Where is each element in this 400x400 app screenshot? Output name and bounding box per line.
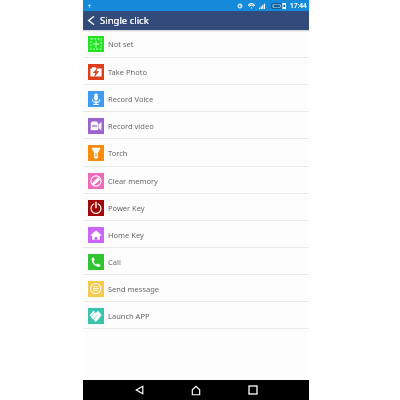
button[interactable]: Back: [124, 380, 154, 400]
button[interactable]: Take Photo: [83, 58, 309, 85]
staticText: Torch: [108, 148, 128, 158]
button[interactable]: Recent apps: [238, 380, 268, 400]
button[interactable]: Not set: [83, 30, 309, 58]
staticText: Take Photo: [108, 67, 147, 77]
staticText: Record video: [108, 121, 154, 131]
button[interactable]: Send message: [83, 275, 309, 302]
button[interactable]: Record Voice: [83, 85, 309, 112]
staticText: 17:44: [290, 1, 307, 10]
staticText: Single click: [100, 14, 149, 27]
button[interactable]: Record video: [83, 112, 309, 139]
staticText: Launch APP: [108, 311, 150, 321]
staticText: Send message: [108, 284, 160, 294]
button[interactable]: Launch APP: [83, 302, 309, 329]
button[interactable]: Home: [181, 380, 211, 400]
staticText: Home Key: [108, 230, 144, 240]
staticText: Clear memory: [108, 176, 158, 186]
staticText: Record Voice: [108, 94, 154, 104]
button[interactable]: Home Key: [83, 221, 309, 248]
staticText: Power Key: [108, 203, 145, 213]
button[interactable]: Call: [83, 248, 309, 275]
button[interactable]: Navigate up: [83, 11, 99, 30]
staticText: Call: [108, 257, 121, 267]
button[interactable]: Clear memory: [83, 167, 309, 194]
button[interactable]: Torch: [83, 139, 309, 167]
button[interactable]: Power Key: [83, 194, 309, 221]
staticText: Not set: [108, 39, 134, 49]
